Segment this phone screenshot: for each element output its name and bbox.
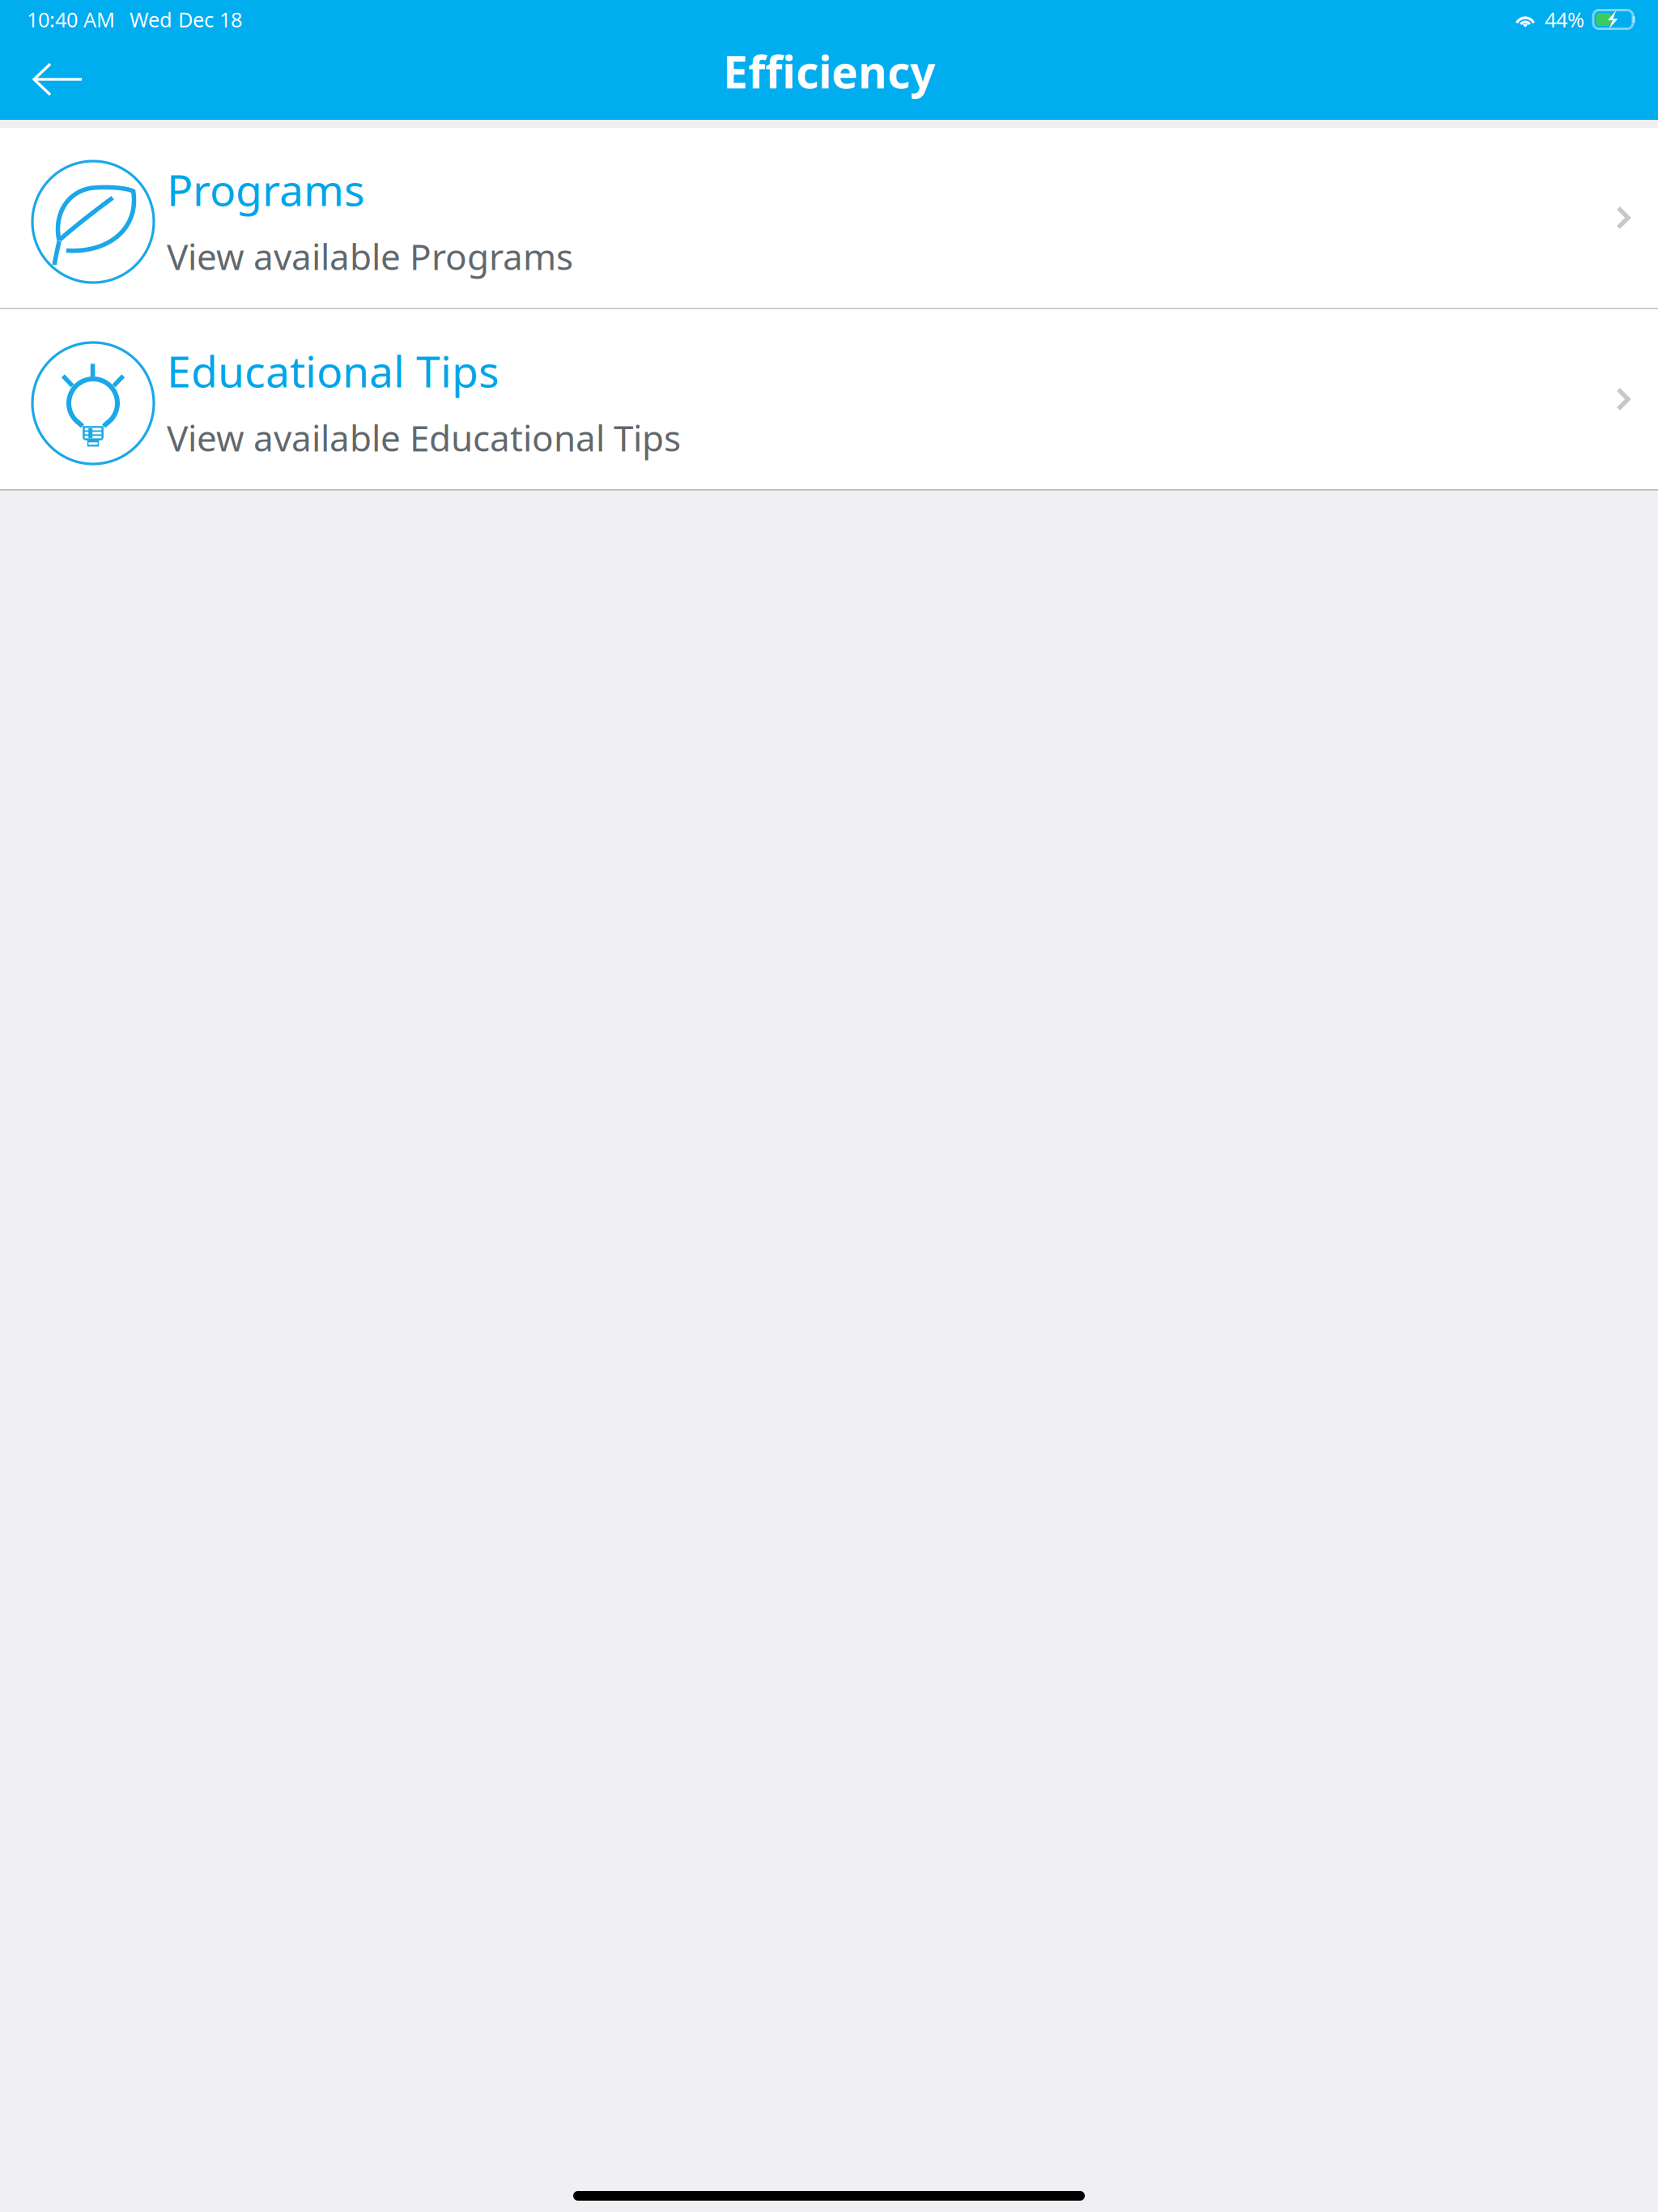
- button[interactable]: Back: [0, 62, 83, 96]
- staticText: View available Educational Tips: [167, 414, 681, 461]
- button[interactable]: Educational Tips: [0, 309, 1658, 489]
- staticText: Wed Dec 18: [130, 6, 242, 33]
- staticText: Efficiency: [723, 42, 935, 101]
- staticText: 10:40 AM: [27, 6, 115, 33]
- button[interactable]: Programs: [0, 128, 1658, 308]
- staticText: View available Programs: [167, 233, 573, 280]
- staticText: Educational Tips: [167, 342, 500, 399]
- staticText: Programs: [167, 161, 365, 218]
- staticText: 44%: [1545, 6, 1584, 33]
